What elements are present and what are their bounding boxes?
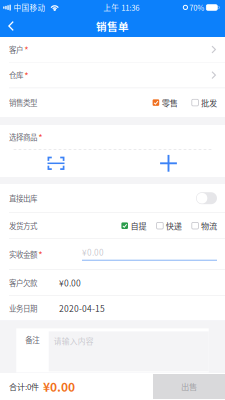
- button[interactable]: 出售: [153, 374, 225, 399]
- staticText: 实收金额: [9, 249, 37, 260]
- button[interactable]: 直接出库: [196, 192, 217, 204]
- staticText: 销售单: [96, 18, 129, 34]
- button[interactable]: 扫码添加商品: [0, 150, 112, 177]
- staticText: 自提: [131, 220, 147, 232]
- button[interactable]: 批发: [192, 96, 217, 110]
- button[interactable]: 客户: [0, 37, 225, 62]
- staticText: *: [38, 247, 42, 261]
- staticText: 零售: [162, 97, 178, 108]
- staticText: *: [24, 43, 28, 56]
- staticText: 中国移动: [14, 2, 46, 13]
- staticText: 选择商品: [9, 132, 37, 142]
- staticText: 合计:0件: [9, 381, 39, 392]
- staticText: ¥0.00: [59, 276, 81, 289]
- button[interactable]: 自提: [121, 219, 147, 233]
- staticText: 请输入内容: [54, 335, 94, 347]
- staticText: ¥0.00: [82, 246, 104, 258]
- staticText: 直接出库: [9, 193, 37, 204]
- button[interactable]: 物流: [192, 219, 217, 233]
- staticText: 仓库: [9, 70, 23, 80]
- staticText: *: [24, 68, 28, 82]
- button[interactable]: 添加商品: [112, 150, 225, 177]
- staticText: 物流: [201, 220, 217, 232]
- button[interactable]: 仓库: [0, 63, 225, 88]
- staticText: 客户: [9, 44, 23, 55]
- staticText: 出售: [181, 380, 197, 392]
- staticText: 客户欠款: [9, 277, 37, 288]
- staticText: 70%: [189, 2, 204, 13]
- staticText: *: [38, 130, 42, 144]
- staticText: 备注: [25, 334, 39, 345]
- staticText: 批发: [201, 97, 217, 108]
- staticText: ¥0.00: [43, 378, 75, 395]
- button[interactable]: 快递: [157, 219, 182, 233]
- button[interactable]: 返回: [0, 15, 22, 37]
- button[interactable]: 零售: [153, 96, 178, 110]
- staticText: 业务日期: [9, 303, 37, 314]
- staticText: 销售类型: [9, 97, 37, 108]
- staticText: 发货方式: [9, 220, 37, 231]
- staticText: 快递: [166, 220, 182, 232]
- staticText: 上午 11:36: [103, 2, 139, 13]
- staticText: 2020-04-15: [59, 302, 105, 314]
